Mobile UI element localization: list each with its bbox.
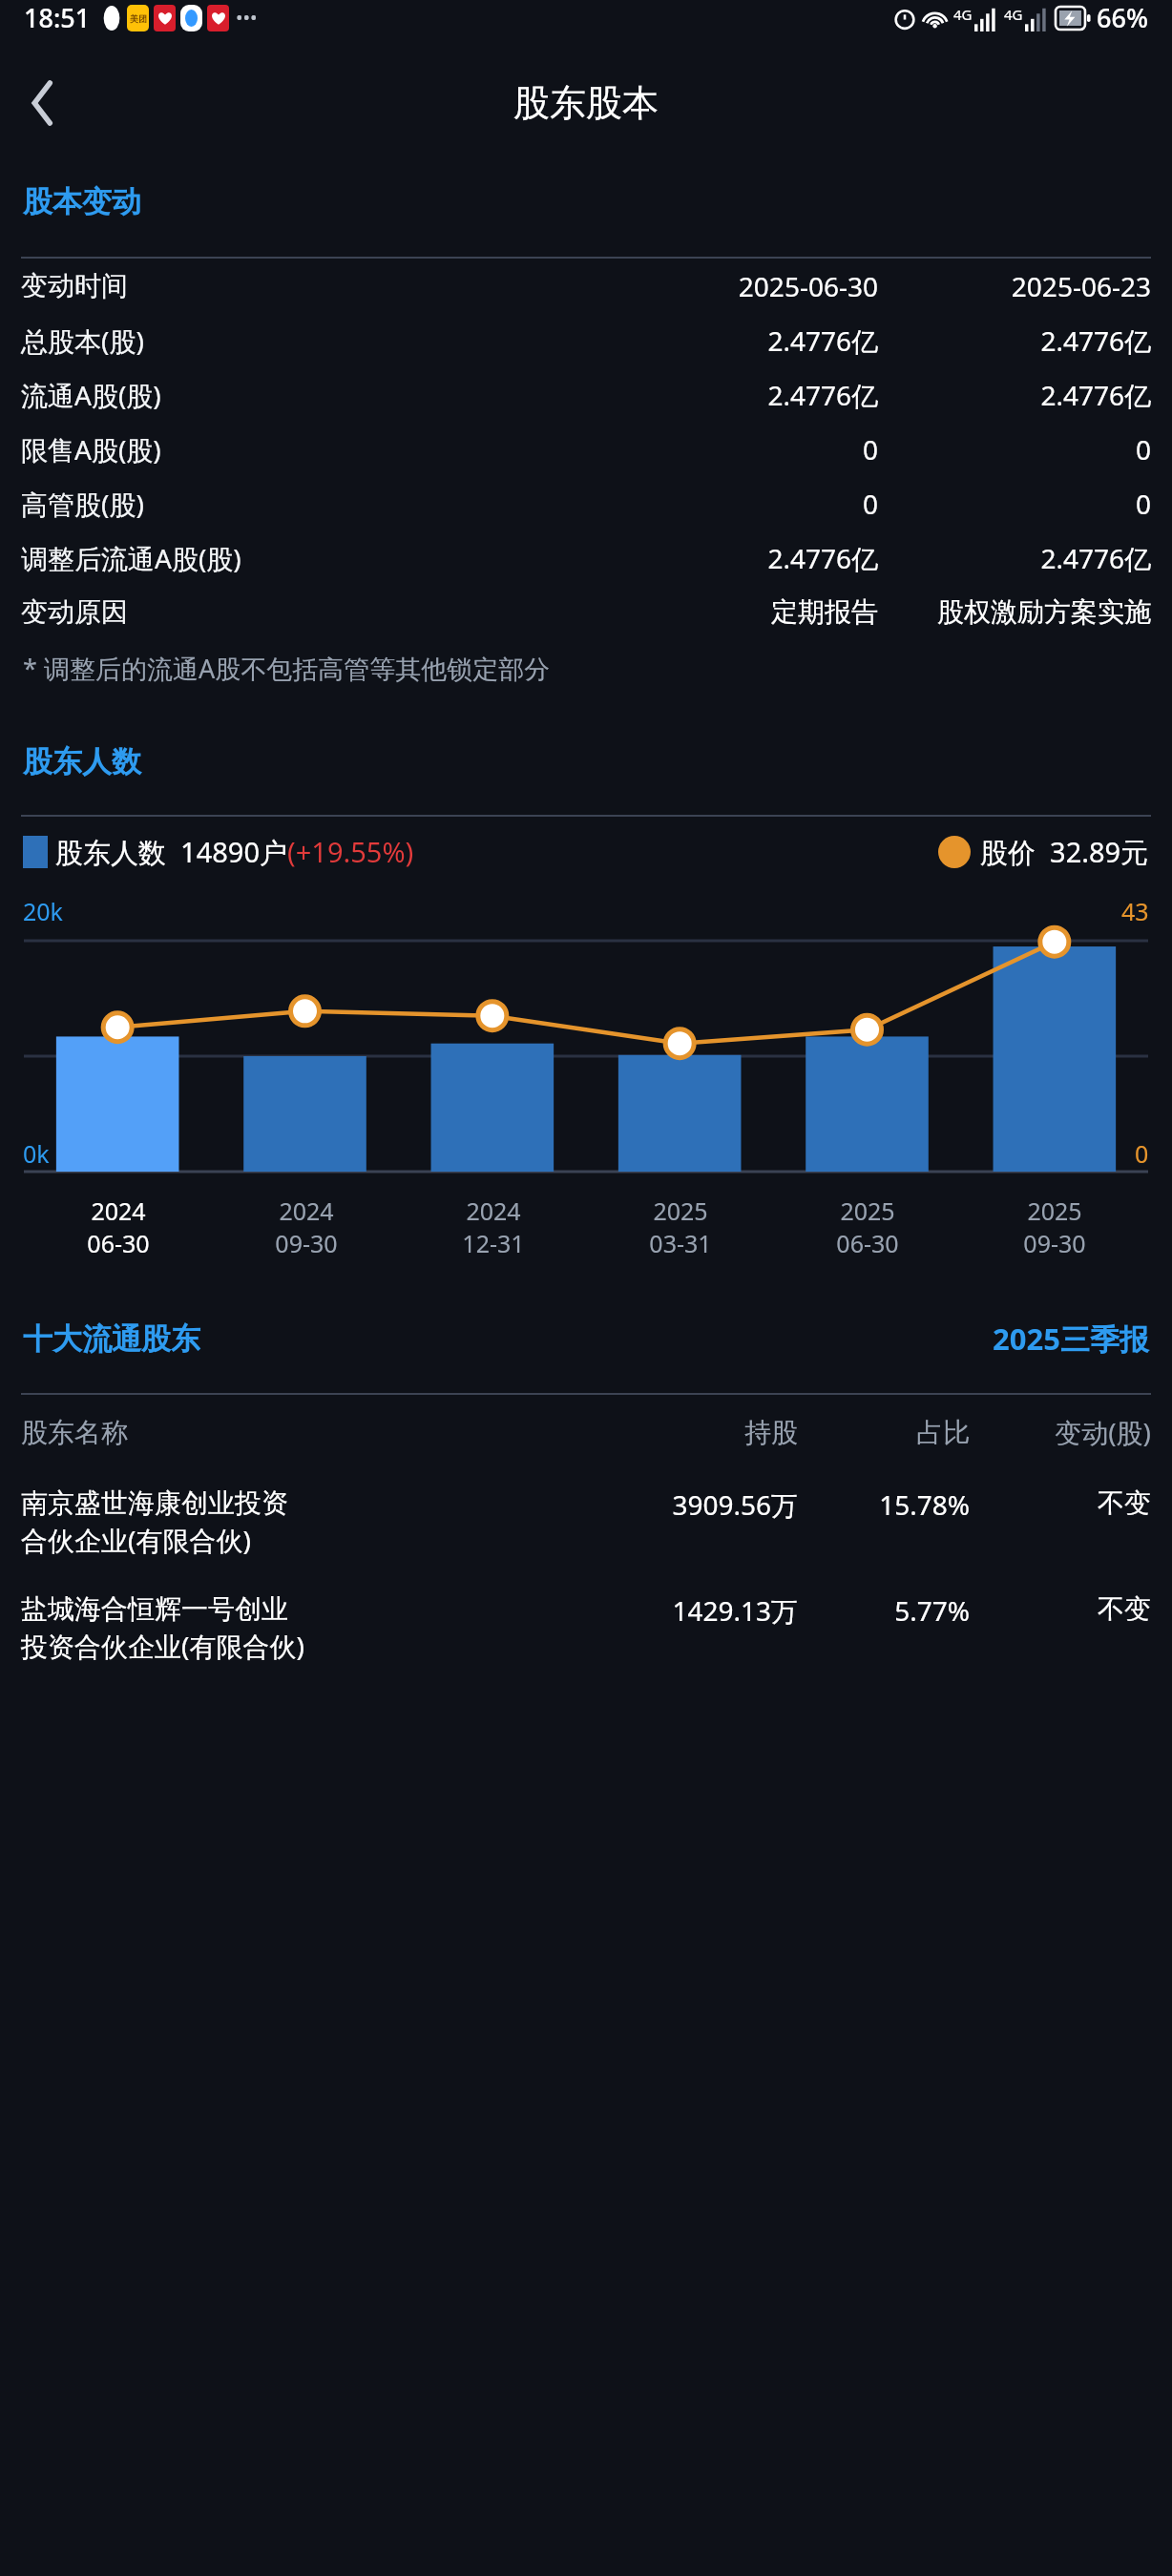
staticText: 持股	[578, 1416, 798, 1449]
staticText: 变动原因	[21, 595, 592, 629]
staticText: 5.77%	[798, 1592, 970, 1629]
staticText: 09-30	[1023, 1227, 1086, 1259]
staticText: 总股本(股)	[21, 322, 592, 359]
staticText: 0	[884, 486, 1151, 522]
button[interactable]: 高管股(股)	[0, 476, 1172, 530]
staticText: 股东人数	[23, 743, 141, 780]
staticText: 股价 32.89元	[980, 833, 1149, 871]
staticText: 2025-06-30	[592, 268, 878, 304]
staticText: 2024	[466, 1195, 521, 1227]
staticText: 20k	[23, 895, 63, 927]
staticText: 2024	[91, 1195, 146, 1227]
staticText: 2025	[1027, 1195, 1082, 1227]
staticText: 调整后流通A股(股)	[21, 540, 592, 576]
staticText: 股东人数 14890户(+19.55%)	[55, 833, 414, 871]
staticText: 不变	[970, 1592, 1151, 1626]
staticText: 股东名称	[21, 1416, 578, 1449]
staticText: •••	[236, 5, 258, 31]
staticText: 2025	[840, 1195, 895, 1227]
staticText: 1429.13万	[578, 1592, 798, 1629]
staticText: 0	[592, 486, 878, 522]
staticText: 变动(股)	[970, 1414, 1151, 1450]
staticText: 2.4776亿	[592, 540, 878, 576]
staticText: 2025三季报	[993, 1319, 1149, 1359]
staticText: 美团	[130, 13, 147, 24]
staticText: 2024	[279, 1195, 334, 1227]
button[interactable]: 盐城海合恒辉一号创业 投资合伙企业(有限合伙)	[0, 1575, 1172, 1681]
staticText: 0	[1135, 1137, 1149, 1170]
staticText: 15.78%	[798, 1486, 970, 1523]
staticText: 2.4776亿	[884, 322, 1151, 359]
button[interactable]: 返回	[10, 70, 76, 136]
staticText: 限售A股(股)	[21, 431, 592, 467]
button[interactable]: 调整后流通A股(股)	[0, 530, 1172, 585]
staticText: 0	[592, 431, 878, 467]
staticText: * 调整后的流通A股不包括高管等其他锁定部分	[23, 651, 551, 686]
staticText: 09-30	[275, 1227, 338, 1259]
staticText: 43	[1121, 895, 1149, 927]
staticText: 12-31	[462, 1227, 525, 1259]
staticText: 03-31	[649, 1227, 712, 1259]
staticText: 定期报告	[592, 595, 878, 629]
button[interactable]: 限售A股(股)	[0, 422, 1172, 476]
staticText: 不变	[970, 1486, 1151, 1520]
staticText: 流通A股(股)	[21, 377, 592, 413]
staticText: 盐城海合恒辉一号创业 投资合伙企业(有限合伙)	[21, 1592, 578, 1664]
staticText: 0k	[23, 1137, 50, 1170]
button[interactable]: 流通A股(股)	[0, 367, 1172, 422]
staticText: 66%	[1097, 0, 1148, 35]
staticText: 2.4776亿	[884, 377, 1151, 413]
staticText: 2.4776亿	[592, 322, 878, 359]
staticText: 股本变动	[23, 183, 141, 220]
button[interactable]: 2025三季报	[993, 1319, 1149, 1359]
staticText: 06-30	[87, 1227, 150, 1259]
button[interactable]: 南京盛世海康创业投资 合伙企业(有限合伙)	[0, 1469, 1172, 1575]
staticText: 变动时间	[21, 269, 592, 302]
staticText: 3909.56万	[578, 1486, 798, 1523]
staticText: 高管股(股)	[21, 486, 592, 522]
staticText: 2025	[653, 1195, 708, 1227]
staticText: 股东股本	[513, 80, 659, 126]
staticText: 2025-06-23	[884, 268, 1151, 304]
staticText: 06-30	[836, 1227, 899, 1259]
button[interactable]: 变动时间	[0, 259, 1172, 313]
staticText: 十大流通股东	[23, 1320, 200, 1358]
staticText: 股权激励方案实施	[884, 595, 1151, 629]
staticText: 18:51	[24, 0, 91, 35]
staticText: 2.4776亿	[884, 540, 1151, 576]
button[interactable]: 变动原因	[0, 585, 1172, 639]
staticText: 占比	[798, 1416, 970, 1449]
staticText: 南京盛世海康创业投资 合伙企业(有限合伙)	[21, 1486, 578, 1558]
staticText: 0	[884, 431, 1151, 467]
staticText: 4G	[953, 5, 973, 24]
staticText: 2.4776亿	[592, 377, 878, 413]
button[interactable]: 总股本(股)	[0, 313, 1172, 367]
staticText: 4G	[1004, 5, 1023, 24]
